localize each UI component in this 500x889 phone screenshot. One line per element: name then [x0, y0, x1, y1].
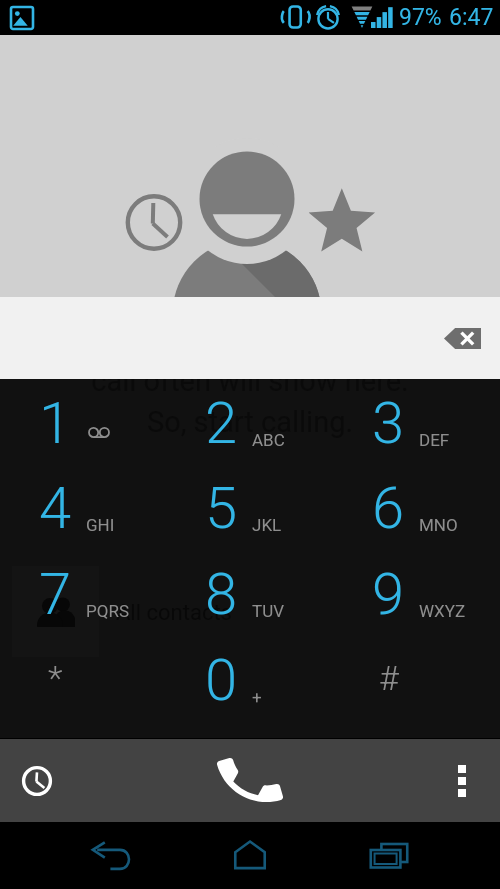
staticText: 7	[39, 560, 72, 628]
staticText: 3	[372, 389, 405, 457]
staticText: All contacts	[116, 600, 232, 626]
button[interactable]: 4	[0, 464, 166, 550]
button[interactable]: *	[0, 636, 166, 722]
button[interactable]: Back	[72, 822, 152, 889]
staticText: 9	[372, 560, 405, 628]
staticText: MNO	[419, 515, 458, 535]
staticText: DEF	[419, 430, 450, 450]
button[interactable]: 9	[333, 550, 500, 636]
staticText: 4	[39, 474, 72, 542]
button[interactable]: 8	[166, 550, 333, 636]
staticText: 5	[205, 474, 238, 542]
button[interactable]: All contacts	[0, 566, 232, 657]
staticText: JKL	[252, 515, 282, 535]
staticText: 8	[205, 560, 238, 628]
staticText: 0	[205, 646, 238, 714]
staticText: 1	[39, 389, 72, 457]
button[interactable]: 3	[333, 379, 500, 464]
staticText: 97%	[399, 4, 442, 31]
button[interactable]: More options	[435, 754, 489, 808]
button[interactable]: 5	[166, 464, 333, 550]
button[interactable]: 1	[0, 379, 166, 464]
button[interactable]: #	[333, 636, 500, 722]
button[interactable]: 2	[166, 379, 333, 464]
staticText: *	[48, 658, 63, 698]
button[interactable]: Home	[210, 822, 290, 889]
staticText: 6	[372, 474, 405, 542]
button[interactable]: 0	[166, 636, 333, 722]
button[interactable]: 6	[333, 464, 500, 550]
button[interactable]: Recent apps	[349, 822, 429, 889]
staticText: TUV	[252, 601, 284, 621]
staticText: PQRS	[86, 601, 129, 621]
staticText: +	[252, 687, 262, 707]
staticText: WXYZ	[419, 601, 466, 621]
staticText: 2	[205, 389, 238, 457]
staticText: ABC	[252, 430, 285, 450]
staticText: 6:47	[449, 4, 494, 31]
button[interactable]: Call	[208, 739, 292, 822]
button[interactable]: Call history	[9, 753, 65, 809]
staticText: GHI	[86, 515, 115, 535]
staticText: #	[379, 658, 399, 698]
staticText: Phone numbers you call often will show h…	[0, 324, 500, 440]
button[interactable]: Backspace	[434, 315, 490, 361]
button[interactable]: 7	[0, 550, 166, 636]
